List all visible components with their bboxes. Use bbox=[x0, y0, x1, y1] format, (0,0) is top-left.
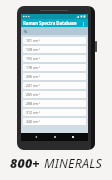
button[interactable]: Home bbox=[51, 133, 59, 141]
staticText: 178 cm⁻¹ bbox=[26, 65, 41, 70]
staticText: 101 cm⁻¹ bbox=[26, 38, 41, 43]
button[interactable]: 101 cm⁻¹ bbox=[23, 37, 86, 44]
button[interactable]: 128 cm⁻¹ bbox=[23, 46, 86, 53]
staticText: MINERALS bbox=[44, 155, 102, 172]
button[interactable]: Recent apps bbox=[69, 133, 77, 141]
button[interactable]: 288 cm⁻¹ bbox=[23, 100, 86, 107]
staticText: 288 cm⁻¹ bbox=[26, 101, 41, 106]
staticText: 340 cm⁻¹ bbox=[26, 119, 41, 124]
staticText: 155 cm⁻¹ bbox=[26, 56, 41, 61]
button[interactable]: More options bbox=[81, 21, 86, 26]
staticText: 206 cm⁻¹ bbox=[26, 74, 41, 79]
staticText: 800+ bbox=[10, 155, 40, 172]
staticText: 312 cm⁻¹ bbox=[26, 110, 41, 115]
button[interactable]: 241 cm⁻¹ bbox=[23, 82, 86, 89]
staticText: 128 cm⁻¹ bbox=[26, 47, 41, 52]
button[interactable]: 265 cm⁻¹ bbox=[23, 91, 86, 98]
button[interactable]: 312 cm⁻¹ bbox=[23, 109, 86, 116]
button[interactable]: Search bbox=[21, 27, 88, 35]
button[interactable]: Back bbox=[32, 133, 40, 141]
button[interactable]: 178 cm⁻¹ bbox=[23, 64, 86, 71]
button[interactable]: 206 cm⁻¹ bbox=[23, 73, 86, 80]
button[interactable]: 340 cm⁻¹ bbox=[23, 118, 86, 125]
staticText: Raman Spectra Database bbox=[23, 20, 77, 26]
staticText: 241 cm⁻¹ bbox=[26, 83, 41, 88]
staticText: 265 cm⁻¹ bbox=[26, 92, 41, 97]
button[interactable]: Raman Spectra Database bbox=[21, 19, 88, 27]
button[interactable]: 155 cm⁻¹ bbox=[23, 55, 86, 62]
